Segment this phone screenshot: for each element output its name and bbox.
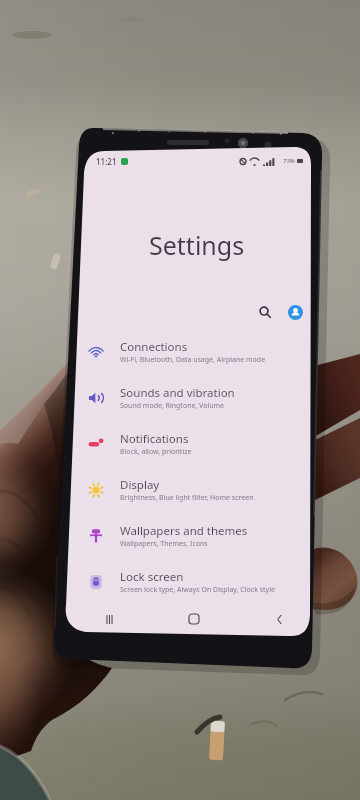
button[interactable]: Search bbox=[253, 300, 277, 324]
staticText: Lock screen bbox=[120, 569, 184, 585]
staticText: Block, allow, prioritize bbox=[120, 447, 192, 457]
staticText: Settings bbox=[149, 228, 245, 262]
staticText: Wallpapers and themes bbox=[120, 523, 248, 539]
button[interactable]: Notifications bbox=[64, 421, 312, 467]
staticText: Sounds and vibration bbox=[120, 385, 235, 401]
staticText: Brightness, Blue light filter, Home scre… bbox=[120, 493, 254, 503]
button[interactable]: Display bbox=[64, 467, 312, 513]
button[interactable]: Wallpapers and themes bbox=[64, 513, 312, 559]
button[interactable]: Recents bbox=[96, 606, 122, 632]
button[interactable]: Sounds and vibration bbox=[64, 375, 312, 421]
button[interactable]: Connections bbox=[64, 329, 312, 375]
staticText: 73% bbox=[283, 157, 295, 165]
button[interactable]: Account bbox=[288, 305, 303, 320]
staticText: Sound mode, Ringtone, Volume bbox=[120, 401, 225, 411]
staticText: Notifications bbox=[120, 431, 189, 447]
button[interactable]: Home bbox=[181, 606, 207, 632]
button[interactable]: Lock screen bbox=[64, 559, 312, 605]
staticText: Screen lock type, Always On Display, Clo… bbox=[120, 585, 275, 595]
button[interactable]: Back bbox=[266, 606, 292, 632]
staticText: Connections bbox=[120, 339, 188, 355]
staticText: 11:21 bbox=[96, 156, 117, 167]
staticText: Wi-Fi, Bluetooth, Data usage, Airplane m… bbox=[120, 355, 266, 365]
staticText: Display bbox=[120, 477, 160, 493]
staticText: Wallpapers, Themes, Icons bbox=[120, 539, 208, 549]
